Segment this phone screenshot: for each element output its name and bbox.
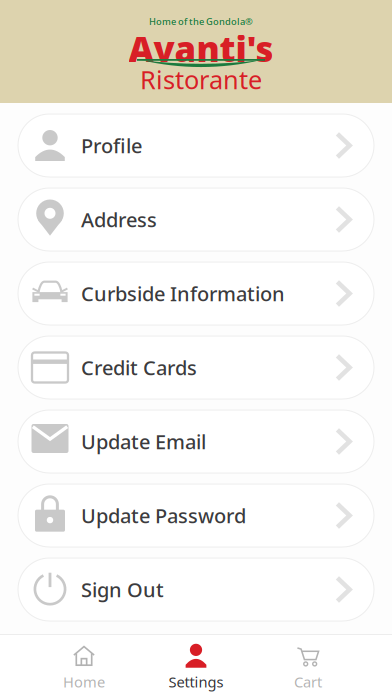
staticText: Curbside Information xyxy=(81,280,285,307)
staticText: Update Password xyxy=(81,502,246,529)
button[interactable]: Address xyxy=(18,188,374,251)
staticText: Credit Cards xyxy=(81,354,197,381)
staticText: Update Email xyxy=(81,428,206,455)
button[interactable]: Sign Out xyxy=(18,558,374,621)
button[interactable]: Credit Cards xyxy=(18,336,374,399)
button[interactable]: Update Email xyxy=(18,410,374,473)
button[interactable]: Profile xyxy=(18,114,374,177)
button[interactable]: Settings xyxy=(140,635,252,696)
staticText: Address xyxy=(81,206,157,233)
button[interactable]: Curbside Information xyxy=(18,262,374,325)
staticText: Sign Out xyxy=(81,576,164,603)
button[interactable]: Cart xyxy=(252,635,364,696)
staticText: Ristorante xyxy=(140,63,262,96)
button[interactable]: Update Password xyxy=(18,484,374,547)
staticText: Profile xyxy=(81,132,142,159)
staticText: Avanti's xyxy=(128,25,273,71)
staticText: Home xyxy=(63,672,105,691)
staticText: Settings xyxy=(168,672,223,691)
staticText: Home of the Gondola® xyxy=(149,15,253,28)
button[interactable]: Home xyxy=(28,635,140,696)
staticText: Cart xyxy=(294,672,322,691)
